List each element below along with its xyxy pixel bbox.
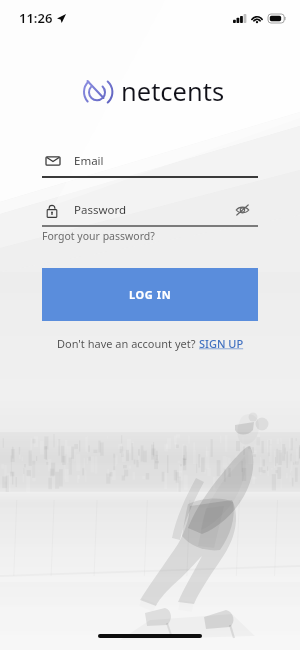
staticText: Password — [74, 202, 127, 218]
staticText: 11:26 — [19, 9, 53, 27]
other: Show password — [235, 203, 250, 217]
button[interactable]: Email — [42, 151, 258, 178]
staticText: LOG IN — [129, 287, 172, 302]
staticText: Don't have an account yet? — [57, 336, 199, 351]
staticText: netcents — [121, 74, 225, 109]
button[interactable]: SIGN UP — [199, 336, 244, 351]
button[interactable]: Forgot your password? — [42, 229, 155, 243]
button[interactable]: Password — [42, 200, 258, 227]
button[interactable]: LOG IN — [42, 268, 258, 321]
staticText: Email — [74, 153, 104, 169]
